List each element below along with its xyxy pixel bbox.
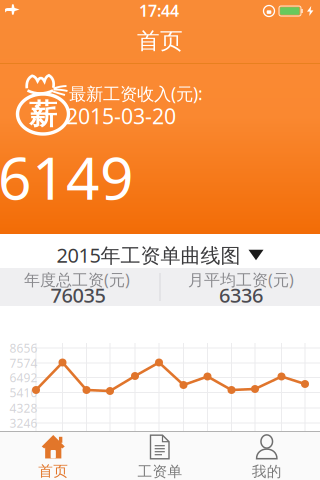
staticText: 工资单 [137, 462, 182, 480]
staticText: 5410 [9, 384, 37, 400]
button[interactable]: 工资单 [106, 433, 213, 480]
staticText: 6336 [219, 282, 263, 308]
staticText: 首页 [38, 462, 68, 480]
staticText: 2015年工资单曲线图 [56, 242, 240, 268]
staticText: 2015-03-20 [66, 102, 176, 130]
button[interactable]: 2015年工资单曲线图 [0, 234, 320, 268]
staticText: 3246 [9, 415, 37, 431]
staticText: 7574 [9, 355, 37, 371]
button[interactable]: 我的 [213, 433, 320, 480]
staticText: 6149 [0, 138, 134, 216]
staticText: 我的 [252, 462, 282, 480]
staticText: 年度总工资(元) [24, 269, 130, 290]
staticText: 首页 [137, 27, 183, 55]
staticText: 薪 [29, 97, 57, 132]
staticText: 6492 [9, 369, 37, 385]
staticText: 17:44 [139, 0, 179, 21]
button[interactable]: 首页 [0, 433, 106, 480]
staticText: 月平均工资(元) [188, 269, 294, 290]
staticText: 76035 [50, 282, 105, 308]
staticText: 最新工资收入(元): [69, 82, 203, 105]
staticText: 8656 [9, 340, 37, 356]
staticText: 4328 [9, 400, 37, 416]
